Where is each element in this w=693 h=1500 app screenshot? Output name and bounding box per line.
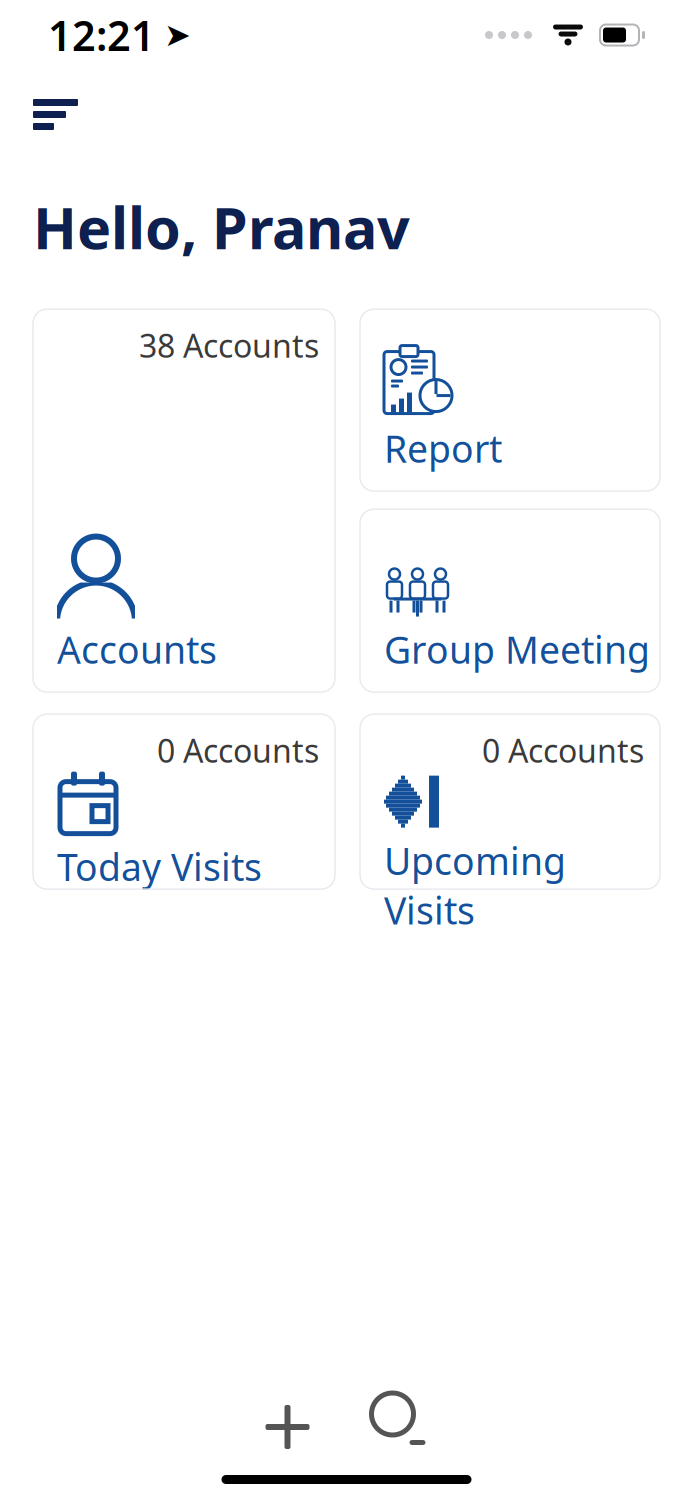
button[interactable]: Search: [371, 1393, 439, 1461]
staticText: Report: [384, 424, 502, 473]
staticText: Upcoming Visits: [384, 836, 566, 935]
staticText: Today Visits: [57, 842, 262, 891]
button[interactable]: Add: [253, 1393, 321, 1461]
button[interactable]: 0 Accounts: [360, 714, 660, 889]
staticText: Group Meeting: [384, 625, 650, 674]
staticText: 0 Accounts: [482, 729, 644, 772]
staticText: 0 Accounts: [157, 729, 319, 772]
button[interactable]: Menu: [0, 84, 102, 145]
button[interactable]: 38 Accounts: [33, 309, 335, 692]
staticText: ➤: [164, 17, 191, 53]
staticText: 12:21: [48, 8, 155, 62]
staticText: 38 Accounts: [139, 324, 319, 367]
button[interactable]: Group Meeting: [360, 509, 660, 692]
staticText: Hello, Pranav: [33, 189, 410, 265]
staticText: Accounts: [57, 625, 217, 674]
button[interactable]: Report: [360, 309, 660, 491]
button[interactable]: 0 Accounts: [33, 714, 335, 889]
